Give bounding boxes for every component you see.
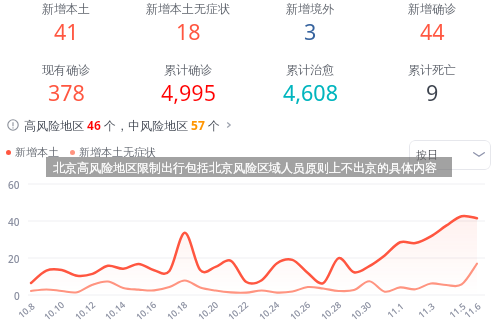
staticText: 累计治愈 <box>286 62 334 77</box>
staticText: 现有确诊 <box>42 62 90 77</box>
staticText: 0 <box>14 289 20 303</box>
staticText: 高风险地区 46 个，中风险地区 57 个 <box>24 117 224 133</box>
staticText: 新增本土 <box>42 1 90 16</box>
staticText: 10.12 <box>72 298 98 322</box>
staticText: 9 <box>426 78 439 107</box>
staticText: 40 <box>8 215 20 229</box>
staticText: 10.20 <box>195 298 221 322</box>
staticText: 10.30 <box>348 298 374 322</box>
staticText: 11.5 <box>446 300 468 320</box>
staticText: 11.3 <box>415 300 437 320</box>
staticText: 10.18 <box>164 298 190 322</box>
staticText: 新增本土无症状 <box>79 145 156 159</box>
staticText: 10.8 <box>15 300 37 320</box>
button[interactable]: 累计治愈 <box>249 62 371 107</box>
staticText: 4,995 <box>161 78 216 107</box>
button[interactable]: 北京高风险地区限制出行包括北京风险区域人员原则上不出京的具体内容 <box>46 157 452 177</box>
staticText: 10.28 <box>318 298 344 322</box>
staticText: 10.14 <box>102 298 128 322</box>
staticText: 10.10 <box>41 298 67 322</box>
staticText: 10.22 <box>225 298 251 322</box>
button[interactable]: 累计死亡 <box>371 62 493 107</box>
button[interactable]: 累计确诊 <box>127 62 249 107</box>
staticText: 20 <box>8 252 20 266</box>
staticText: 10.24 <box>256 298 282 322</box>
staticText: 新增本土无症状 <box>146 1 230 16</box>
staticText: 新增本土 <box>15 145 59 159</box>
staticText: 新增确诊 <box>408 1 456 16</box>
button[interactable]: 按日 <box>409 140 491 170</box>
staticText: 18 <box>176 17 201 46</box>
staticText: 累计死亡 <box>408 62 456 77</box>
staticText: 10.26 <box>287 298 313 322</box>
button[interactable]: 新增境外 <box>249 1 371 46</box>
other: Expand <box>473 151 485 158</box>
button[interactable]: 新增本土无症状 <box>127 1 249 46</box>
staticText: 11.1 <box>384 300 406 320</box>
button[interactable]: 新增确诊 <box>371 1 493 46</box>
staticText: 按日 <box>416 148 438 162</box>
staticText: 3 <box>304 17 317 46</box>
staticText: 累计确诊 <box>164 62 212 77</box>
staticText: 新增境外 <box>286 1 334 16</box>
staticText: 北京高风险地区限制出行包括北京风险区域人员原则上不出京的具体内容 <box>53 160 437 175</box>
staticText: 41 <box>54 17 79 46</box>
staticText: 10.16 <box>133 298 159 322</box>
button[interactable]: 高风险地区 46 个，中风险地区 57 个 <box>7 114 234 136</box>
button[interactable]: 新增本土 <box>5 1 127 46</box>
staticText: 378 <box>48 78 85 107</box>
staticText: 11.6 <box>461 300 483 320</box>
button[interactable]: 现有确诊 <box>5 62 127 107</box>
staticText: 44 <box>420 17 445 46</box>
staticText: 60 <box>8 178 20 192</box>
staticText: 4,608 <box>283 78 338 107</box>
